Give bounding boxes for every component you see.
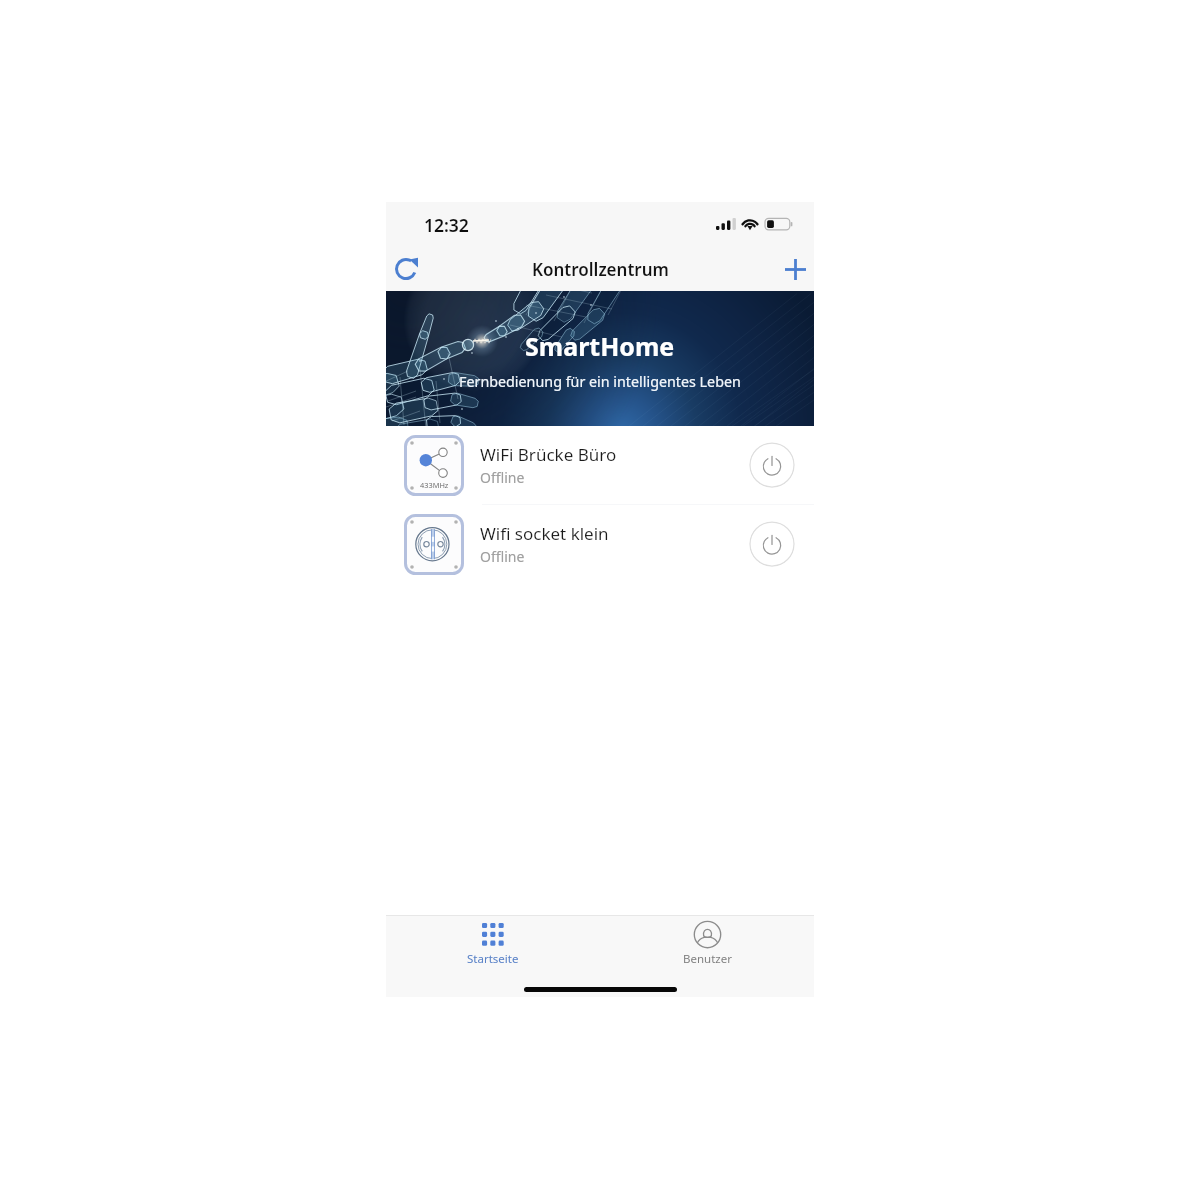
staticText: Offline xyxy=(480,468,525,487)
staticText: Startseite xyxy=(467,951,519,967)
staticText: Fernbedienung für ein intelligentes Lebe… xyxy=(459,372,741,391)
button[interactable]: Startseite xyxy=(386,916,600,970)
button[interactable]: Power toggle xyxy=(749,521,795,567)
staticText: 12:32 xyxy=(424,213,469,237)
staticText: SmartHome xyxy=(525,329,675,363)
button[interactable]: Benutzer xyxy=(600,916,814,970)
button[interactable]: Power toggle xyxy=(749,442,795,488)
staticText: Offline xyxy=(480,547,525,566)
staticText: Benutzer xyxy=(683,951,732,967)
staticText: 433MHz xyxy=(420,480,449,490)
button[interactable]: Add device xyxy=(773,247,817,291)
staticText: WiFi Brücke Büro xyxy=(480,443,617,466)
staticText: Kontrollzentrum xyxy=(532,258,669,281)
button[interactable]: Wifi socket klein xyxy=(386,505,814,583)
button[interactable]: 433MHz xyxy=(386,426,814,504)
staticText: Wifi socket klein xyxy=(480,522,609,545)
button[interactable]: Refresh xyxy=(384,247,428,291)
